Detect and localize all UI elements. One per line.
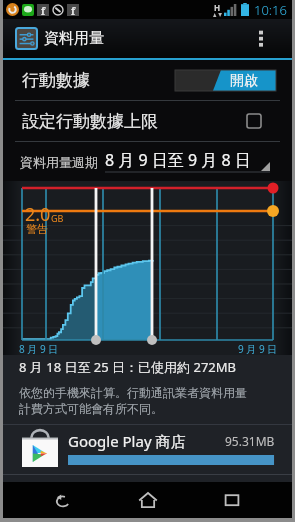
staticText: f	[41, 4, 46, 16]
staticText: 8 月 9 日	[19, 342, 59, 356]
button[interactable]: Home	[123, 482, 173, 518]
staticText: 10:16	[254, 1, 287, 19]
staticText: H	[214, 2, 221, 13]
staticText: 8 月 9 日至 9 月 8 日	[105, 149, 251, 171]
staticText: f	[71, 4, 76, 16]
staticText: 警告	[26, 222, 48, 236]
button[interactable]: 行動數據	[22, 60, 276, 100]
staticText: 資料用量週期	[20, 154, 98, 170]
staticText: 依您的手機來計算。行動通訊業者資料用量 計費方式可能會有所不同。	[19, 385, 247, 417]
staticText: 8 月 18 日至 25 日：已使用約 272MB	[19, 358, 237, 376]
button[interactable]: More options	[246, 19, 276, 58]
button[interactable]: 設定行動數據上限	[22, 101, 261, 141]
staticText: 9 月 9 日	[238, 342, 278, 356]
staticText: GB	[51, 212, 64, 224]
staticText: Google Play 商店	[68, 431, 186, 451]
staticText: 行動數據	[22, 70, 90, 91]
button[interactable]: Back	[38, 482, 88, 518]
staticText: 設定行動數據上限	[22, 111, 158, 132]
button[interactable]: Recents	[207, 482, 257, 518]
button[interactable]: 8 月 9 日至 9 月 8 日	[105, 146, 270, 178]
staticText: 95.31MB	[225, 433, 275, 449]
staticText: 2.0	[25, 202, 51, 227]
staticText: 開啟	[230, 72, 258, 90]
staticText: 資料用量	[44, 29, 104, 48]
button[interactable]: 資料用量	[3, 19, 292, 58]
button[interactable]: Google Play 商店	[22, 425, 275, 470]
